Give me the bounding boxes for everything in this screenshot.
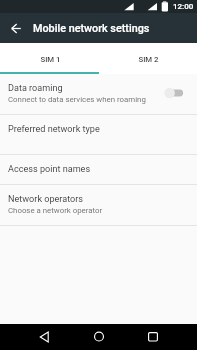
button[interactable]: Data roaming — [0, 74, 197, 114]
button[interactable]: Access point names — [0, 155, 197, 184]
staticText: Preferred network type — [8, 124, 100, 135]
staticText: Data roaming — [8, 83, 63, 94]
button[interactable]: Back — [31, 324, 57, 350]
staticText: Mobile network settings — [33, 22, 150, 35]
button[interactable]: Preferred network type — [0, 115, 197, 154]
staticText: 12:00 — [173, 2, 194, 11]
staticText: Access point names — [8, 164, 91, 175]
staticText: Choose a network operator — [8, 206, 103, 215]
button[interactable]: SIM 2 — [98, 43, 197, 74]
button[interactable]: Home — [86, 324, 112, 350]
button[interactable]: Data roaming switch — [160, 80, 190, 106]
staticText: Network operators — [8, 194, 84, 205]
staticText: SIM 2 — [138, 55, 159, 64]
staticText: SIM 1 — [40, 55, 61, 64]
button[interactable]: Network operators — [0, 185, 197, 225]
button[interactable]: SIM 1 — [0, 43, 98, 74]
staticText: Connect to data services when roaming — [8, 95, 146, 104]
button[interactable]: Recent apps — [140, 324, 166, 350]
button[interactable]: Navigate up — [4, 13, 28, 43]
